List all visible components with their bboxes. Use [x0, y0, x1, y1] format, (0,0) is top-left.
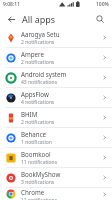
- button[interactable]: Behance: [0, 128, 112, 148]
- staticText: 3 notifications: [21, 179, 55, 186]
- button[interactable]: BHIM: [0, 108, 112, 128]
- staticText: 9:08:11: [3, 1, 21, 8]
- staticText: 1 notification: [21, 139, 52, 146]
- staticText: BHIM: [21, 110, 38, 118]
- staticText: 43 notifications: [21, 79, 58, 86]
- staticText: BookMyShow: [21, 170, 61, 178]
- button[interactable]: BookMyShow: [0, 168, 112, 188]
- staticText: 2 notifications: [21, 39, 55, 46]
- staticText: Aarogya Setu: [21, 30, 60, 38]
- staticText: Chrome: [21, 188, 45, 196]
- button[interactable]: Back: [3, 11, 19, 27]
- button[interactable]: Android system: [0, 68, 112, 88]
- staticText: 100%: [96, 1, 109, 8]
- staticText: 11 notifications: [21, 197, 58, 200]
- staticText: Behance: [21, 130, 47, 138]
- button[interactable]: Search: [92, 11, 108, 27]
- button[interactable]: AppsFlow: [0, 88, 112, 108]
- staticText: 2 notifications: [21, 59, 55, 66]
- staticText: Boomkool: [21, 150, 51, 158]
- button[interactable]: Ampere: [0, 48, 112, 68]
- staticText: Android system: [21, 70, 67, 78]
- staticText: AppsFlow: [21, 90, 49, 98]
- staticText: All apps: [22, 13, 56, 25]
- staticText: Ampere: [21, 50, 44, 58]
- button[interactable]: Boomkool: [0, 148, 112, 168]
- staticText: 4 notifications: [21, 99, 55, 106]
- button[interactable]: Aarogya Setu: [0, 28, 112, 48]
- button[interactable]: Chrome: [0, 188, 112, 200]
- staticText: 11 notifications: [21, 159, 58, 166]
- staticText: 2 notifications: [21, 119, 55, 126]
